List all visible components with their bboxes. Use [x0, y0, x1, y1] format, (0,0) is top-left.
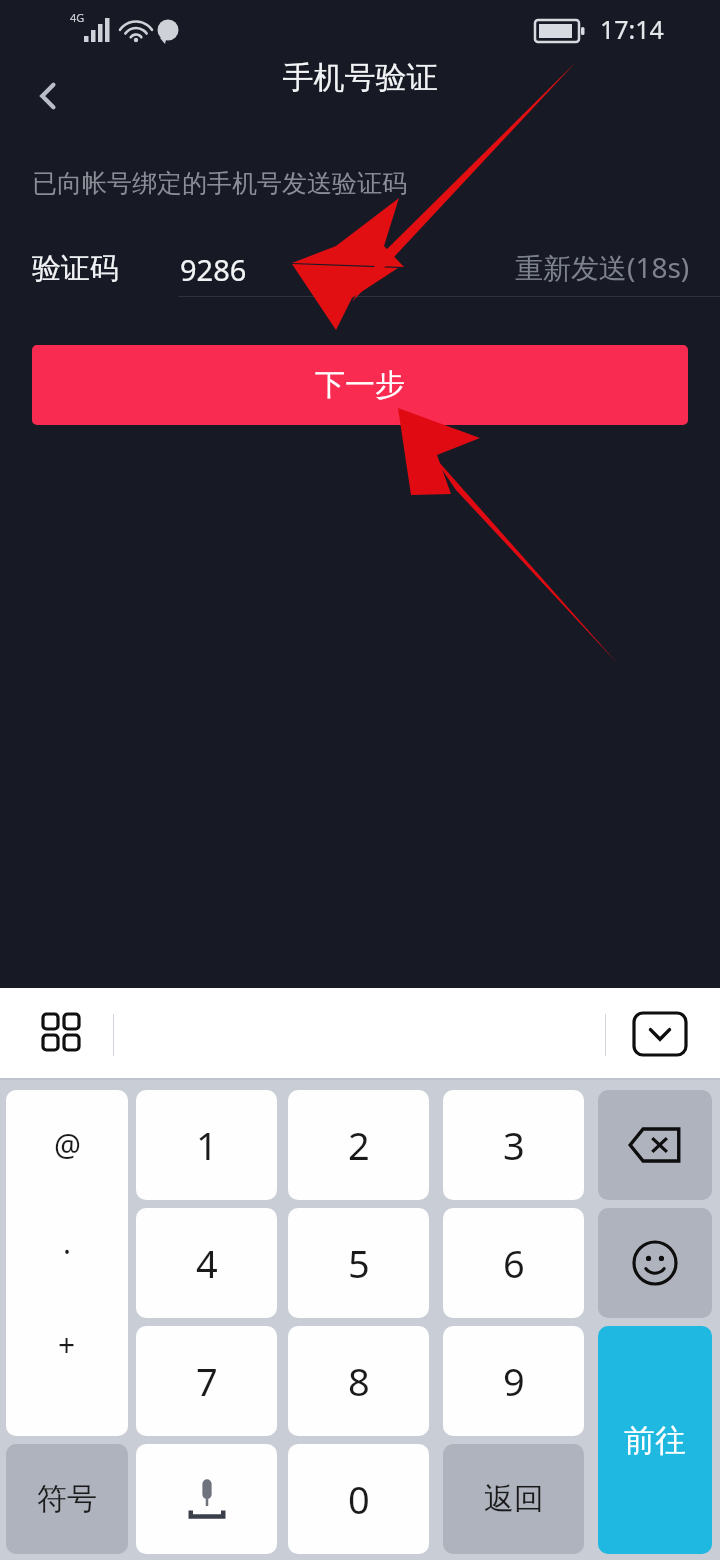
button[interactable]: 0 — [288, 1444, 429, 1554]
staticText: 17:14 — [600, 12, 664, 46]
staticText: 符号 — [37, 1480, 97, 1518]
staticText: 1 — [196, 1119, 218, 1171]
staticText: 重新发送(18s) — [515, 248, 690, 286]
button[interactable]: 5 — [288, 1208, 429, 1318]
button[interactable]: 4 — [136, 1208, 277, 1318]
button[interactable]: 3 — [443, 1090, 584, 1200]
staticText: 4 — [196, 1237, 218, 1289]
button[interactable]: 重新发送(18s) — [490, 238, 690, 296]
staticText: 5 — [348, 1237, 370, 1289]
staticText: 下一步 — [315, 366, 405, 404]
staticText: 3 — [503, 1119, 525, 1171]
button[interactable]: 2 — [288, 1090, 429, 1200]
staticText: 4G — [70, 10, 85, 25]
staticText: 9286 — [180, 250, 247, 289]
staticText: 手机号验证 — [0, 58, 720, 97]
button[interactable]: Emoji — [598, 1208, 712, 1318]
staticText: @ — [54, 1124, 81, 1165]
staticText: 6 — [503, 1237, 525, 1289]
staticText: 0 — [348, 1473, 370, 1525]
staticText: 9 — [503, 1355, 525, 1407]
staticText: · — [63, 1231, 72, 1272]
button[interactable]: 前往 — [598, 1326, 712, 1554]
button[interactable]: 符号 — [6, 1444, 128, 1554]
staticText: 8 — [348, 1355, 370, 1407]
button[interactable]: Backspace — [598, 1090, 712, 1200]
staticText: 返回 — [484, 1480, 544, 1518]
button[interactable]: Symbols at sign period plus minus — [6, 1090, 128, 1436]
button[interactable]: 下一步 — [32, 345, 688, 425]
staticText: 验证码 — [32, 250, 119, 287]
button[interactable]: Hide keyboard — [628, 1002, 692, 1066]
button[interactable]: 6 — [443, 1208, 584, 1318]
button[interactable]: 8 — [288, 1326, 429, 1436]
button[interactable]: Voice input — [136, 1444, 277, 1554]
staticText: 2 — [348, 1119, 370, 1171]
button[interactable]: 返回 — [443, 1444, 584, 1554]
button[interactable]: 7 — [136, 1326, 277, 1436]
button[interactable]: Keyboard modes — [20, 988, 106, 1080]
staticText: 7 — [196, 1355, 218, 1407]
staticText: + — [58, 1324, 76, 1365]
staticText: 已向帐号绑定的手机号发送验证码 — [32, 168, 407, 199]
staticText: 前往 — [624, 1421, 686, 1460]
button[interactable]: 9 — [443, 1326, 584, 1436]
button[interactable]: Back — [14, 58, 82, 134]
button[interactable]: 1 — [136, 1090, 277, 1200]
